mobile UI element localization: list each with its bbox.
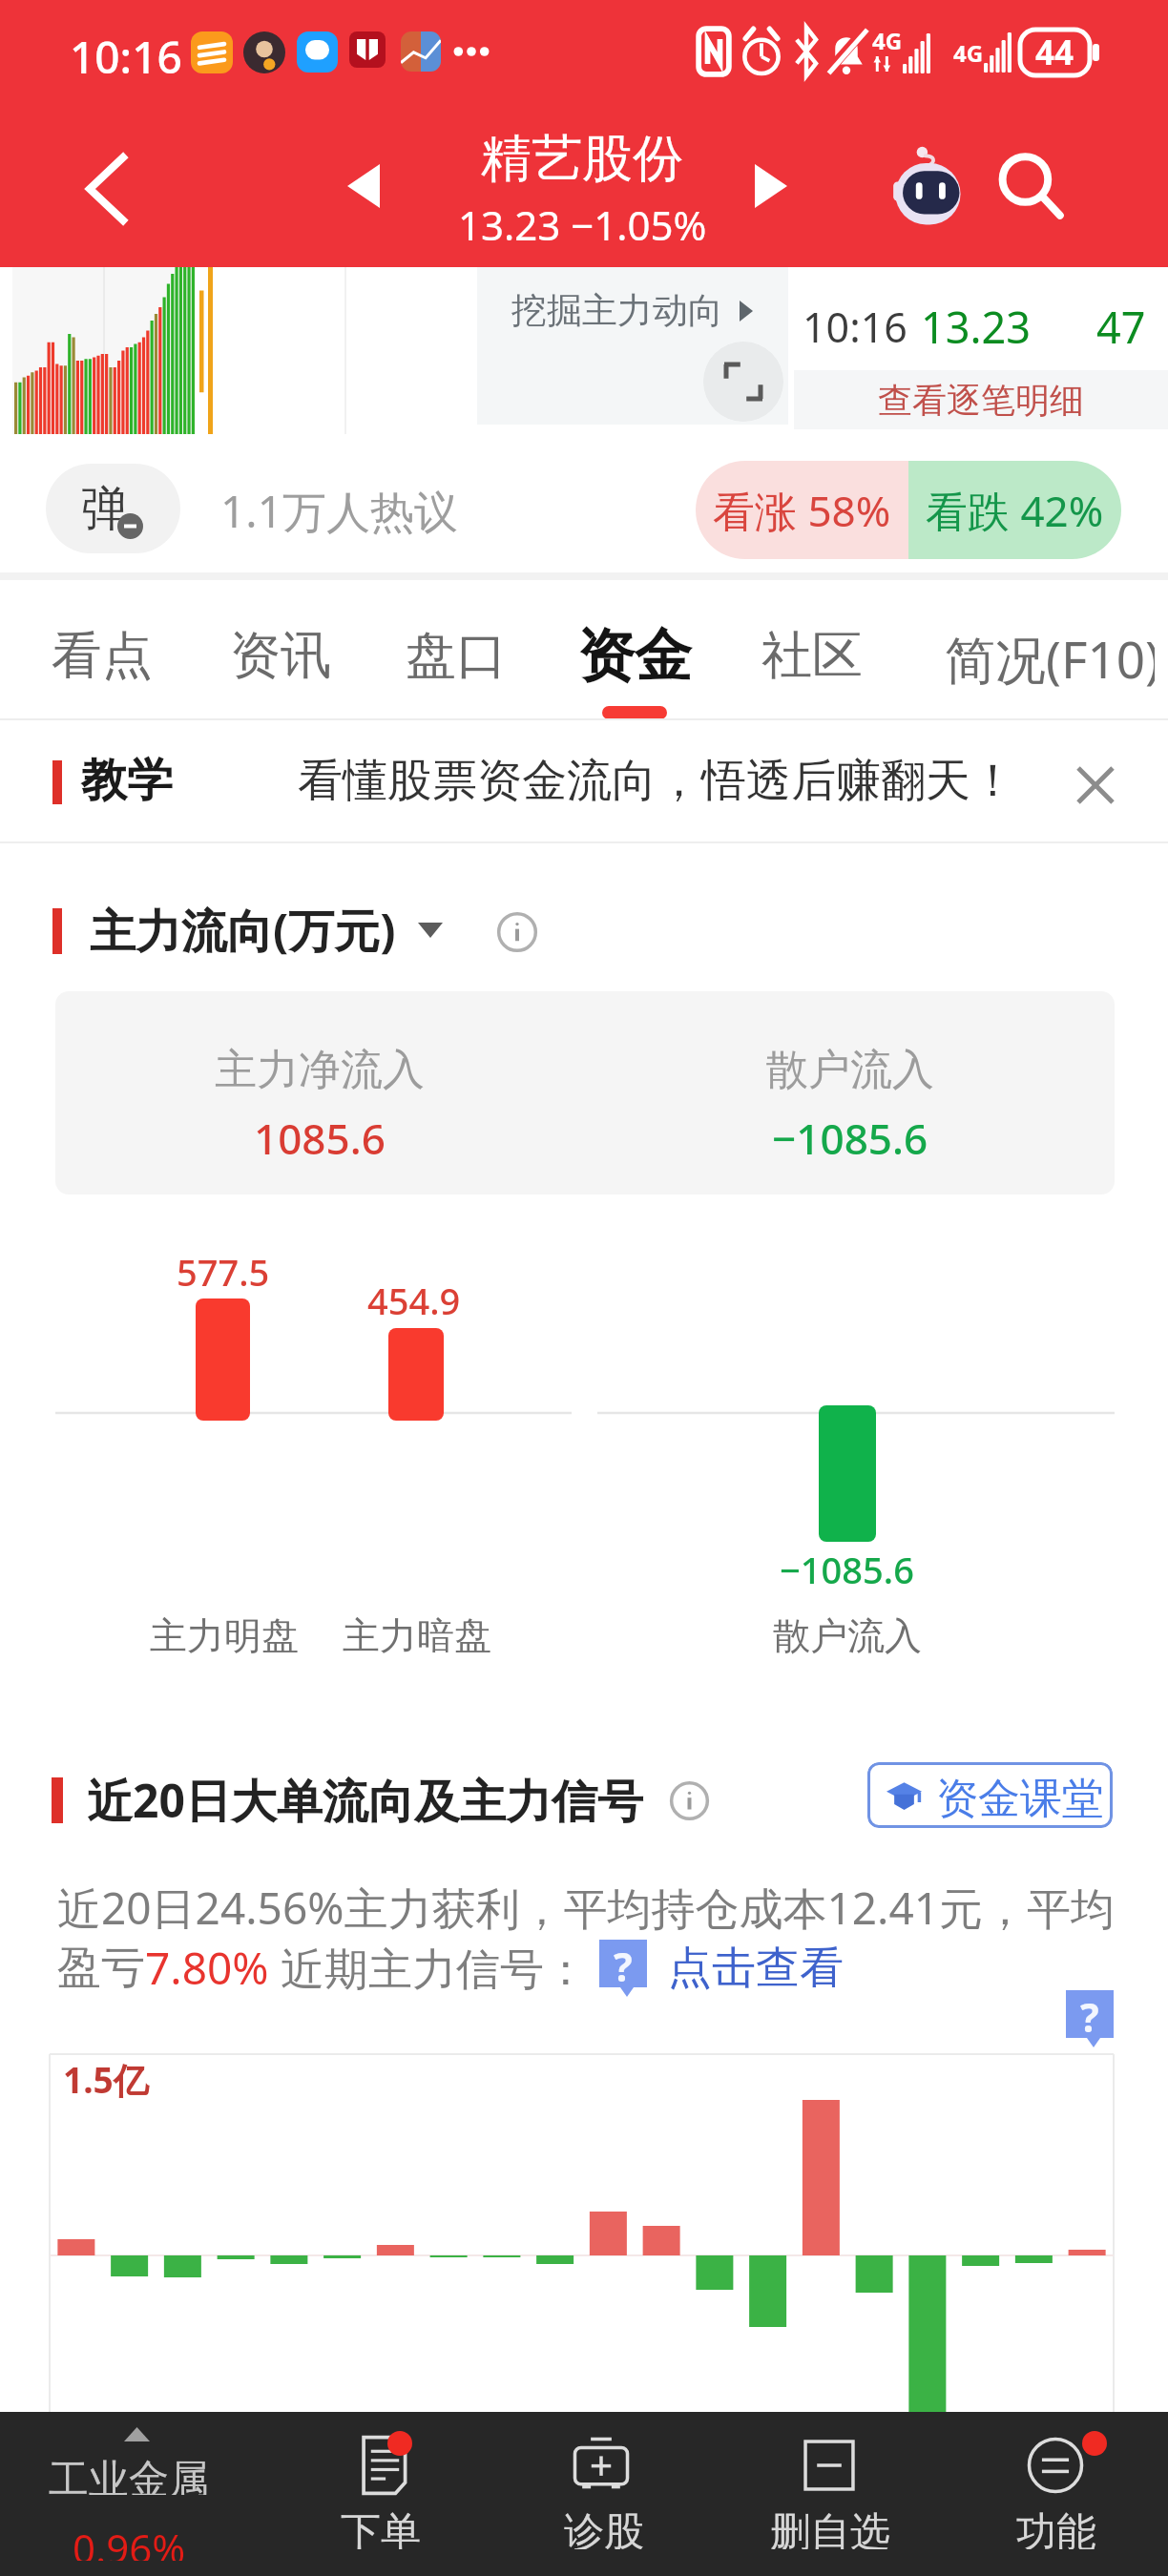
button[interactable]: Fullscreen	[703, 342, 783, 422]
staticText: 功能	[1016, 2507, 1096, 2549]
staticText: 1.1万人热议	[220, 481, 458, 541]
button[interactable]: 资金课堂	[867, 1762, 1113, 1828]
staticText: 散户流入	[766, 1044, 934, 1093]
staticText: 资讯	[230, 624, 331, 688]
staticText: 47	[1096, 298, 1146, 356]
button[interactable]: 看涨 58%	[696, 461, 1121, 559]
button[interactable]: 查看逐笔明细	[794, 370, 1168, 429]
staticText: 13.23	[921, 298, 1032, 356]
staticText: 577.5	[177, 1247, 270, 1297]
button[interactable]: Chart help	[1066, 1990, 1114, 2047]
button[interactable]: 资金	[530, 580, 740, 720]
staticText: 精艺股份	[481, 127, 683, 184]
button[interactable]: 工业金属	[0, 2412, 258, 2576]
staticText: 近20日大单流向及主力信号	[87, 1769, 643, 1832]
button[interactable]: Signal help	[599, 1940, 647, 1997]
button[interactable]: 简况(F10)	[945, 580, 1155, 720]
staticText: 下单	[341, 2507, 421, 2549]
staticText: 删自选	[770, 2507, 890, 2549]
button[interactable]: Close	[1061, 751, 1130, 820]
button[interactable]: 诊股	[490, 2412, 719, 2576]
staticText: 社区	[761, 624, 863, 688]
button[interactable]: Next stock	[714, 105, 828, 267]
staticText: 44	[1035, 30, 1074, 75]
staticText: 10:16	[70, 27, 182, 87]
staticText: 主力净流入	[215, 1044, 425, 1093]
staticText: 主力明盘	[150, 1612, 299, 1659]
staticText: 看懂股票资金流向，悟透后赚翻天！	[298, 753, 1015, 809]
staticText: 看点	[52, 624, 153, 688]
staticText: 1.5亿	[63, 2055, 149, 2104]
staticText: 0.96%	[73, 2521, 186, 2561]
staticText: 弹	[81, 479, 129, 539]
staticText: 主力暗盘	[343, 1612, 491, 1659]
button[interactable]: 精艺股份	[296, 105, 868, 267]
staticText: 近期主力信号：	[269, 1938, 588, 1998]
staticText: 散户流入	[773, 1612, 922, 1659]
staticText: 查看逐笔明细	[878, 379, 1084, 422]
staticText: 教学	[81, 752, 173, 809]
staticText: 盘口	[406, 624, 507, 688]
button[interactable]: 看点	[0, 580, 207, 720]
button[interactable]: Search	[973, 105, 1088, 267]
staticText: 看跌 42%	[926, 482, 1104, 539]
staticText: −1085.6	[772, 1110, 928, 1159]
button[interactable]: 资讯	[176, 580, 386, 720]
button[interactable]: 功能	[942, 2412, 1168, 2576]
button[interactable]: 点击查看	[668, 1941, 844, 1996]
button[interactable]: 弹	[46, 464, 180, 553]
button[interactable]: Back	[38, 105, 162, 267]
staticText: 4G	[953, 37, 984, 69]
button[interactable]: 社区	[707, 580, 917, 720]
staticText: 4G	[872, 25, 903, 56]
button[interactable]: 主力流向(万元)	[90, 899, 443, 962]
button[interactable]: Info	[662, 1774, 716, 1827]
staticText: 7.80%	[145, 1938, 269, 1998]
button[interactable]: 下单	[266, 2412, 495, 2576]
staticText: 10:16	[803, 299, 907, 355]
staticText: ?	[614, 1940, 633, 1985]
button[interactable]: Info	[488, 903, 547, 962]
staticText: 1085.6	[254, 1110, 386, 1159]
button[interactable]: 盘口	[351, 580, 561, 720]
button[interactable]: 删自选	[716, 2412, 945, 2576]
staticText: 盈亏	[57, 1941, 145, 1996]
staticText: 13.23 −1.05%	[458, 197, 707, 245]
staticText: 资金	[577, 620, 692, 693]
staticText: ?	[1080, 1990, 1099, 2036]
staticText: 看涨 58%	[713, 482, 891, 539]
staticText: −1085.6	[780, 1545, 914, 1594]
staticText: 诊股	[564, 2507, 644, 2549]
staticText: 454.9	[367, 1276, 461, 1325]
staticText: 挖掘主力动向	[511, 288, 723, 333]
staticText: 资金课堂	[936, 1773, 1104, 1825]
staticText: 近20日24.56%主力获利，平均持仓成本12.41元，平均	[57, 1878, 1116, 1938]
button[interactable]: AI assistant	[876, 142, 981, 230]
staticText: 简况(F10)	[945, 624, 1155, 693]
staticText: 主力流向(万元)	[90, 899, 396, 962]
button[interactable]: Previous stock	[306, 105, 421, 267]
staticText: 工业金属	[49, 2455, 209, 2495]
